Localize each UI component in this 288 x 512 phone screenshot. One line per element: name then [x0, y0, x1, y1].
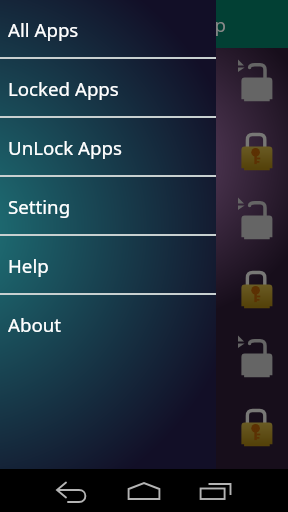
button[interactable]: Locked Apps: [0, 59, 216, 118]
staticText: Locked Apps: [8, 76, 119, 101]
staticText: App: [191, 12, 226, 37]
button[interactable]: [0, 48, 288, 117]
button[interactable]: [0, 324, 288, 393]
button[interactable]: [0, 255, 288, 324]
button[interactable]: [0, 117, 288, 186]
staticText: Setting: [8, 194, 71, 219]
button[interactable]: UnLock Apps: [0, 118, 216, 177]
button[interactable]: All Apps: [0, 0, 216, 59]
button[interactable]: Back: [55, 469, 89, 512]
button[interactable]: [0, 186, 288, 255]
button[interactable]: [0, 393, 288, 462]
staticText: About: [8, 312, 62, 337]
button[interactable]: Home: [127, 469, 161, 512]
button[interactable]: About: [0, 295, 216, 354]
button[interactable]: Recent apps: [199, 469, 233, 512]
button[interactable]: Help: [0, 236, 216, 295]
button[interactable]: Setting: [0, 177, 216, 236]
staticText: All Apps: [8, 17, 79, 42]
button[interactable]: [0, 462, 288, 469]
staticText: UnLock Apps: [8, 135, 122, 160]
staticText: Help: [8, 253, 49, 278]
